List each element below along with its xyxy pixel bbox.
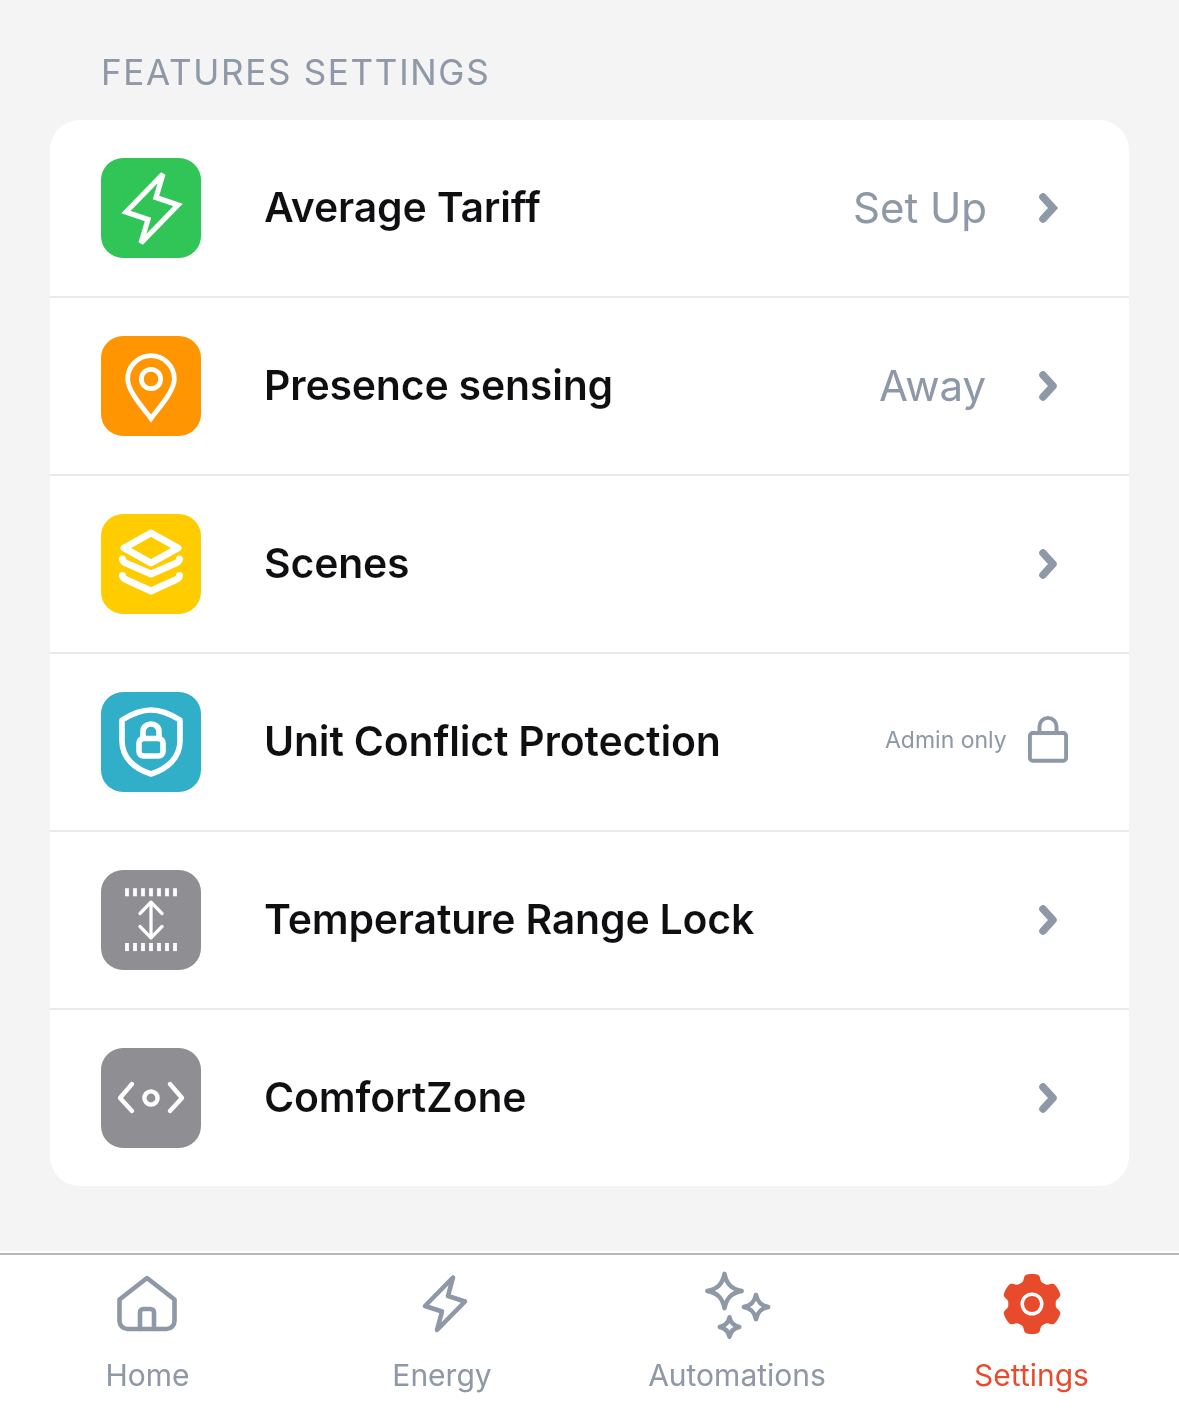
staticText: FEATURES SETTINGS (101, 51, 491, 93)
button[interactable]: Energy (294, 1255, 589, 1393)
other: Open Average Tariff (1012, 172, 1084, 244)
button[interactable]: Automations (589, 1255, 884, 1393)
staticText: Away (879, 360, 987, 411)
button[interactable]: Presence sensing (50, 298, 1129, 474)
button[interactable]: Temperature Range Lock (50, 832, 1129, 1008)
staticText: Automations (648, 1357, 826, 1393)
staticText: Presence sensing (264, 360, 614, 410)
button[interactable]: Home (0, 1255, 294, 1393)
staticText: Admin only (885, 726, 1007, 754)
other: Locked (1012, 706, 1084, 778)
staticText: Average Tariff (264, 182, 541, 232)
staticText: Home (105, 1357, 190, 1393)
button[interactable]: Average Tariff (50, 120, 1129, 296)
button[interactable]: Scenes (50, 476, 1129, 652)
button[interactable]: ComfortZone (50, 1010, 1129, 1186)
staticText: Energy (392, 1357, 492, 1393)
staticText: Set Up (853, 182, 987, 233)
button[interactable]: Settings (884, 1255, 1179, 1393)
staticText: Unit Conflict Protection (264, 716, 721, 766)
other: Open Temperature Range Lock (1012, 884, 1084, 956)
staticText: Temperature Range Lock (264, 894, 755, 944)
button[interactable]: Unit Conflict Protection (50, 654, 1129, 830)
other: Open Presence sensing (1012, 350, 1084, 422)
staticText: Scenes (264, 538, 410, 588)
staticText: ComfortZone (264, 1072, 527, 1122)
other: Open Scenes (1012, 528, 1084, 600)
other: Open ComfortZone (1012, 1062, 1084, 1134)
staticText: Settings (974, 1357, 1089, 1393)
